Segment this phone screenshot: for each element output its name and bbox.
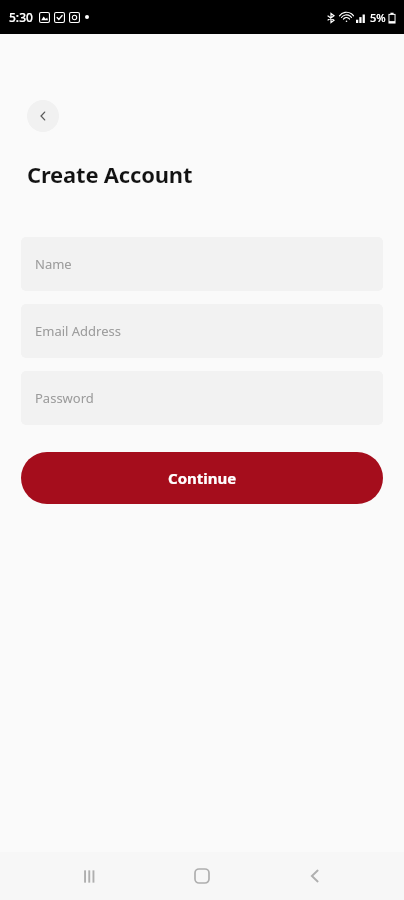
staticText: Continue xyxy=(168,468,237,488)
button[interactable]: Recent apps xyxy=(65,852,113,900)
button[interactable]: Email Address xyxy=(21,304,383,358)
button[interactable]: Password xyxy=(21,371,383,425)
staticText: Password xyxy=(35,389,94,407)
button[interactable]: Back xyxy=(291,852,339,900)
button[interactable]: Back xyxy=(27,100,59,132)
button[interactable]: Home xyxy=(178,852,226,900)
staticText: 5:30 xyxy=(9,9,33,25)
staticText: 5% xyxy=(370,10,386,25)
button[interactable]: Continue xyxy=(21,452,383,504)
staticText: Email Address xyxy=(35,322,121,340)
button[interactable]: Name xyxy=(21,237,383,291)
staticText: Create Account xyxy=(27,159,193,189)
staticText: Name xyxy=(35,255,72,273)
